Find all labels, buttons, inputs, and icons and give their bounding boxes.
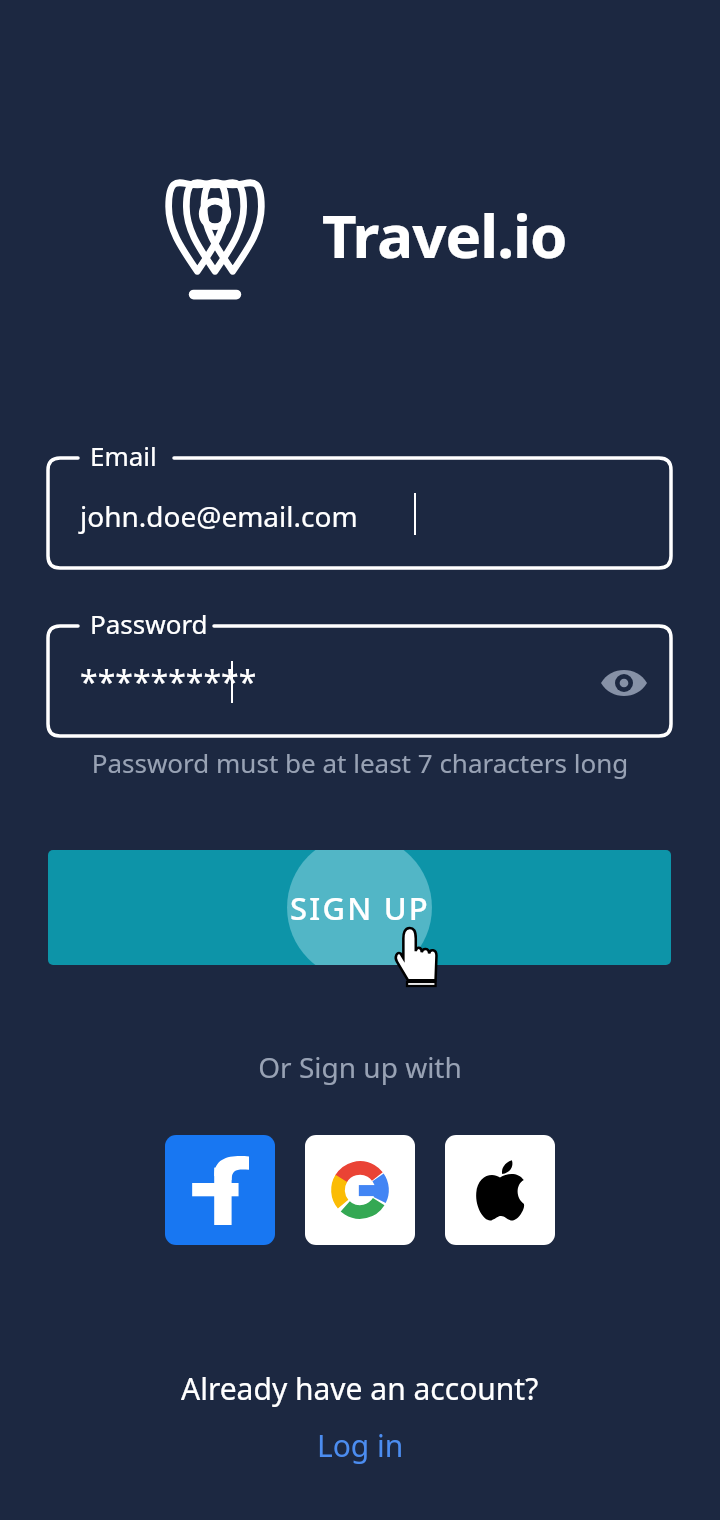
button[interactable]: SIGN UP — [48, 850, 671, 965]
button[interactable]: Sign up with Facebook — [165, 1135, 275, 1245]
staticText: SIGN UP — [290, 887, 430, 929]
staticText: Log in — [317, 1425, 404, 1466]
button[interactable]: Show password — [596, 655, 652, 711]
button[interactable]: Log in — [307, 1421, 414, 1470]
staticText: Or Sign up with — [0, 1048, 720, 1086]
staticText: Already have an account? — [181, 1368, 539, 1409]
staticText: Travel.io — [322, 194, 567, 276]
staticText: Password — [90, 606, 208, 641]
staticText: john.doe@email.com — [80, 497, 358, 535]
staticText: ********** — [80, 660, 257, 704]
button[interactable]: Sign up with Google — [305, 1135, 415, 1245]
button[interactable]: Sign up with Apple — [445, 1135, 555, 1245]
staticText: Password must be at least 7 characters l… — [0, 745, 720, 780]
staticText: Email — [90, 438, 157, 473]
